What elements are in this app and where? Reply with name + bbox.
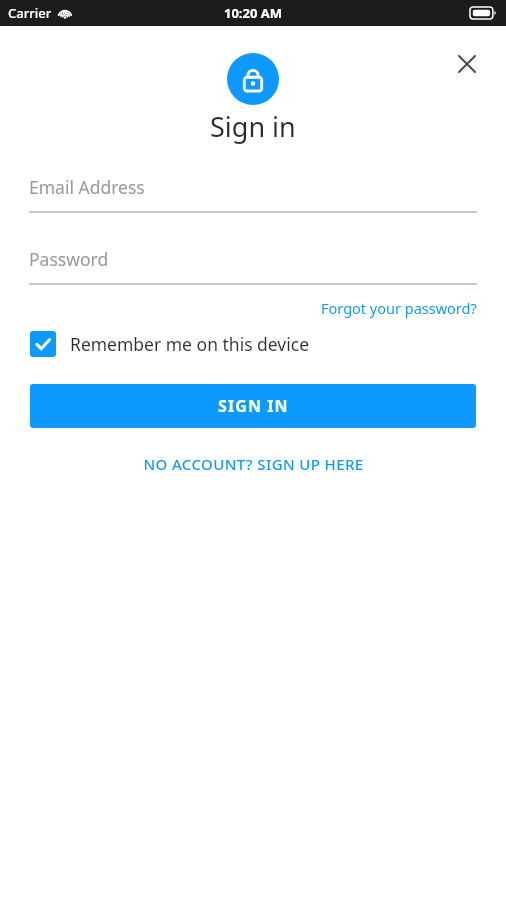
button[interactable]: Password bbox=[29, 247, 477, 285]
button[interactable]: Forgot your password? bbox=[321, 296, 477, 320]
staticText: 10:20 AM bbox=[224, 4, 283, 22]
button[interactable]: NO ACCOUNT? SIGN UP HERE bbox=[131, 450, 376, 478]
staticText: Sign in bbox=[210, 108, 296, 145]
button[interactable]: Email Address bbox=[29, 175, 477, 213]
staticText: Remember me on this device bbox=[70, 332, 310, 356]
button[interactable]: Remember me on this device bbox=[0, 329, 506, 359]
staticText: Email Address bbox=[29, 175, 145, 199]
button[interactable]: SIGN IN bbox=[30, 384, 476, 428]
staticText: Password bbox=[29, 247, 109, 271]
button[interactable]: Secure sign in bbox=[227, 53, 279, 105]
button[interactable]: Close bbox=[450, 47, 484, 81]
staticText: SIGN IN bbox=[218, 395, 289, 417]
staticText: Carrier bbox=[8, 4, 52, 22]
